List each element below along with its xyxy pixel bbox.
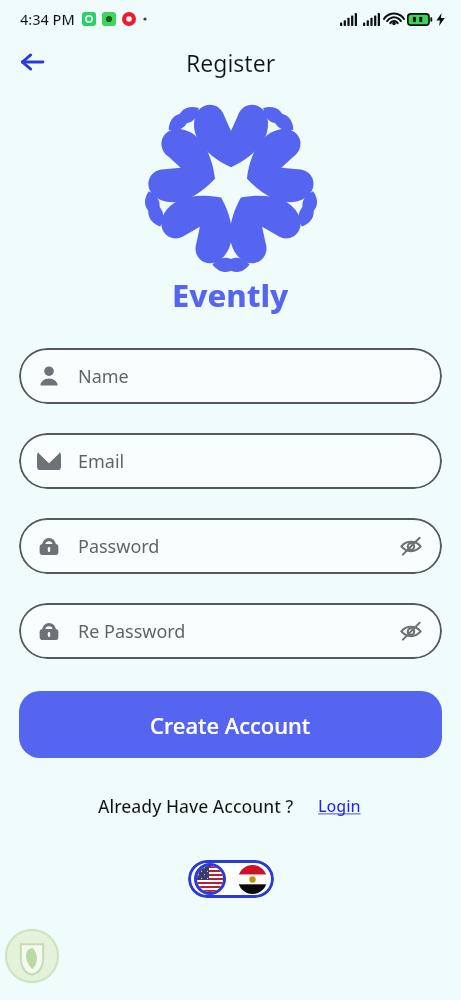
staticText: Re Password	[78, 619, 396, 644]
staticText: Name	[78, 364, 426, 389]
staticText: Login	[318, 795, 361, 817]
staticText: 4:34 PM	[20, 9, 75, 29]
button[interactable]: Password	[19, 518, 442, 574]
staticText: Evently	[172, 274, 289, 316]
button[interactable]: Email	[19, 433, 442, 489]
staticText: Password	[78, 534, 396, 559]
button[interactable]: Back	[10, 40, 54, 84]
button[interactable]: Create Account	[19, 691, 442, 758]
staticText: Create Account	[150, 710, 311, 740]
staticText: Already Have Account ?	[98, 794, 294, 818]
button[interactable]: Login	[316, 791, 363, 821]
button[interactable]: Name	[19, 348, 442, 404]
button[interactable]: Change language	[188, 860, 274, 898]
staticText: Register	[186, 47, 276, 78]
button[interactable]: Show password	[396, 531, 426, 561]
button[interactable]: Show password	[396, 616, 426, 646]
staticText: Email	[78, 449, 426, 474]
button[interactable]: Re Password	[19, 603, 442, 659]
